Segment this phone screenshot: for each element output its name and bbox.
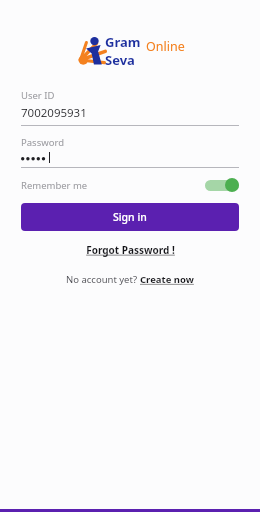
staticText: Password (21, 136, 64, 149)
staticText: Create now (140, 273, 194, 286)
staticText: Forgot Password ! (86, 243, 175, 257)
staticText: User ID (21, 89, 55, 102)
staticText: Seva (105, 51, 135, 69)
staticText: Remember me (21, 179, 88, 192)
staticText: Gram (105, 33, 141, 51)
staticText: Sign in (113, 210, 147, 224)
button[interactable]: Sign in (21, 203, 239, 231)
staticText: No account yet? (66, 273, 140, 286)
button[interactable]: Remember me (21, 175, 239, 195)
other: Remember me toggle (205, 178, 239, 192)
staticText: 7002095931 (21, 105, 87, 121)
button[interactable]: Forgot Password ! (82, 241, 179, 259)
button[interactable]: Create now (140, 273, 194, 286)
staticText: Online (146, 38, 185, 55)
